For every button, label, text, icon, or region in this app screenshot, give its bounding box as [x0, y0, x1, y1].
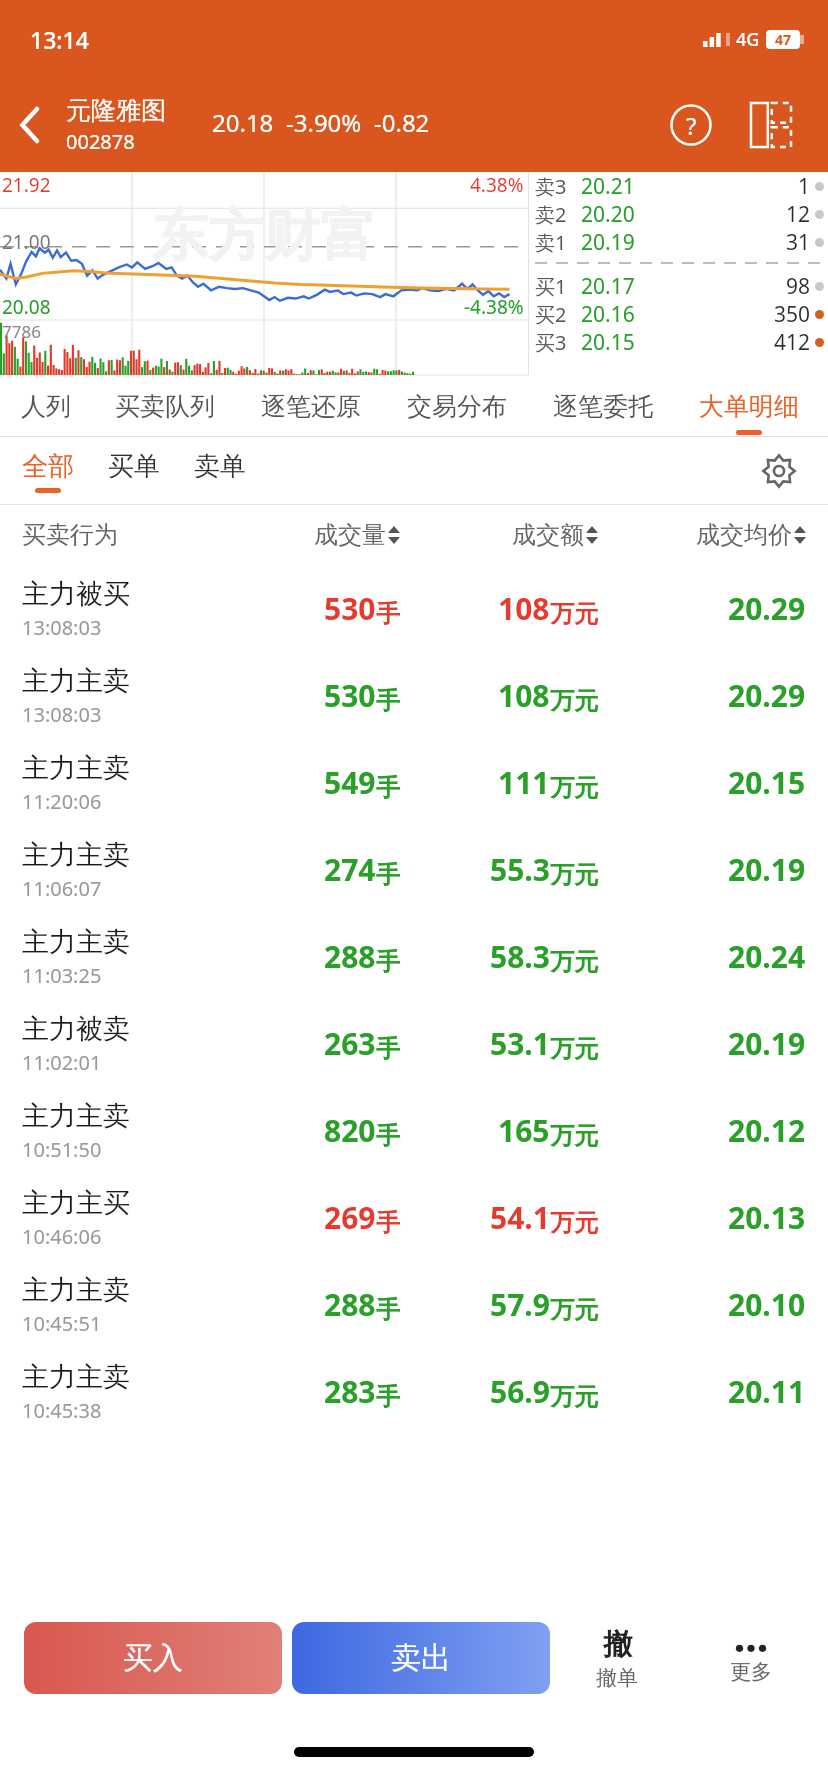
button[interactable]: 买入 [24, 1622, 282, 1694]
staticText: 20.16 [581, 300, 774, 328]
button[interactable]: Help [664, 98, 718, 152]
button[interactable]: 卖1 [535, 228, 824, 256]
staticText: 20.20 [581, 200, 786, 228]
staticText: 手 [376, 1295, 400, 1325]
staticText: 主力主卖 [22, 1273, 130, 1307]
button[interactable]: 逐笔还原 [238, 375, 384, 437]
staticText: 万元 [550, 1208, 598, 1238]
staticText: 10:51:50 [22, 1136, 102, 1163]
staticText: 283 [324, 1371, 376, 1412]
staticText: 58.3 [490, 936, 550, 977]
staticText: 53.1 [490, 1023, 550, 1064]
button[interactable]: 买2 [535, 300, 824, 328]
button[interactable]: 撤 [550, 1604, 684, 1712]
button[interactable]: 卖单 [194, 450, 246, 493]
button[interactable]: 买卖队列 [92, 375, 238, 437]
staticText: 11:06:07 [22, 875, 102, 902]
staticText: 撤 [603, 1626, 632, 1663]
staticText: 撤单 [596, 1665, 638, 1691]
button[interactable]: 主力主买 [0, 1174, 828, 1261]
staticText: 412 [774, 328, 811, 356]
staticText: 20.13 [728, 1197, 806, 1238]
staticText: 20.15 [728, 762, 806, 803]
button[interactable]: 全部 [22, 450, 74, 493]
button[interactable]: 主力主卖 [0, 652, 828, 739]
button[interactable]: 主力主卖 [0, 826, 828, 913]
button[interactable]: 主力主卖 [0, 1348, 828, 1435]
staticText: 288 [324, 1284, 376, 1325]
button[interactable]: 人列 [0, 375, 92, 437]
button[interactable]: 买1 [535, 272, 824, 300]
staticText: 手 [376, 773, 400, 803]
staticText: 20.19 [581, 228, 786, 256]
staticText: 主力被买 [22, 577, 130, 611]
staticText: 买2 [535, 301, 567, 328]
staticText: 820 [324, 1110, 376, 1151]
staticText: 57.9 [490, 1284, 550, 1325]
button[interactable]: 买3 [535, 328, 824, 356]
staticText: 人列 [21, 391, 71, 422]
staticText: 手 [376, 947, 400, 977]
staticText: 20.17 [581, 272, 786, 300]
staticText: 20.19 [728, 1023, 806, 1064]
staticText: 54.1 [490, 1197, 550, 1238]
staticText: 20.12 [728, 1110, 806, 1151]
staticText: 13:08:03 [22, 614, 102, 641]
staticText: 买1 [535, 273, 567, 300]
button[interactable]: 成交额 [400, 520, 598, 550]
staticText: 主力被卖 [22, 1012, 130, 1046]
button[interactable]: Back [0, 78, 60, 172]
button[interactable]: 主力主卖 [0, 1087, 828, 1174]
staticText: 全部 [22, 450, 74, 483]
button[interactable]: 卖出 [292, 1622, 550, 1694]
button[interactable]: 主力被买 [0, 565, 828, 652]
staticText: 20.29 [728, 588, 806, 629]
staticText: 47 [775, 30, 792, 49]
staticText: 卖1 [535, 229, 567, 256]
button[interactable]: 主力被卖 [0, 1000, 828, 1087]
staticText: 逐笔委托 [553, 391, 653, 422]
button[interactable]: 主力主卖 [0, 913, 828, 1000]
staticText: 卖3 [535, 173, 567, 200]
staticText: 7786 [2, 320, 41, 343]
button[interactable]: 逐笔委托 [530, 375, 676, 437]
button[interactable]: Layout [744, 98, 798, 152]
staticText: 20.21 [581, 172, 798, 200]
staticText: 主力主卖 [22, 925, 130, 959]
button[interactable]: 成交均价 [598, 520, 806, 550]
button[interactable]: 更多 [684, 1604, 818, 1712]
button[interactable]: 主力主卖 [0, 1261, 828, 1348]
button[interactable]: 成交量 [202, 520, 400, 550]
staticText: 12 [786, 200, 811, 228]
staticText: 逐笔还原 [261, 391, 361, 422]
staticText: 10:45:38 [22, 1397, 102, 1424]
button[interactable]: 卖3 [535, 172, 824, 200]
staticText: -0.82 [374, 106, 430, 139]
button[interactable]: 交易分布 [384, 375, 530, 437]
button[interactable]: 大单明细 [676, 375, 822, 437]
staticText: 万元 [550, 773, 598, 803]
staticText: 万元 [550, 1382, 598, 1412]
staticText: 手 [376, 599, 400, 629]
staticText: 万元 [550, 1034, 598, 1064]
staticText: 21.92 [2, 172, 51, 198]
staticText: 卖出 [391, 1639, 451, 1677]
staticText: 成交均价 [696, 520, 792, 550]
button[interactable]: Settings [756, 448, 802, 494]
staticText: 002878 [66, 128, 135, 155]
staticText: 20.19 [728, 849, 806, 890]
staticText: 13:14 [30, 24, 89, 55]
staticText: 买单 [108, 450, 160, 483]
staticText: 288 [324, 936, 376, 977]
staticText: 买3 [535, 329, 567, 356]
staticText: 350 [774, 300, 811, 328]
staticText: 手 [376, 860, 400, 890]
button[interactable]: 卖2 [535, 200, 824, 228]
button[interactable]: 主力主卖 [0, 739, 828, 826]
button[interactable]: 买单 [108, 450, 160, 493]
staticText: 卖单 [194, 450, 246, 483]
staticText: 万元 [550, 860, 598, 890]
staticText: 主力主卖 [22, 664, 130, 698]
staticText: 98 [786, 272, 811, 300]
staticText: 20.10 [728, 1284, 806, 1325]
